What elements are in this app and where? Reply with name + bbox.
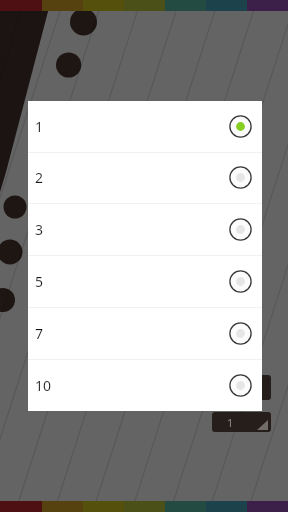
staticText: 2 — [35, 168, 44, 187]
button[interactable]: 7 — [28, 307, 262, 359]
button[interactable]: 10 — [28, 359, 262, 411]
staticText: 1 — [227, 415, 234, 430]
other: Resize handle — [258, 375, 271, 400]
staticText: 10 — [35, 376, 52, 395]
staticText: 5 — [35, 272, 44, 291]
button[interactable]: 2 — [28, 152, 262, 203]
other: Resize window — [212, 412, 271, 432]
button[interactable]: 3 — [28, 203, 262, 255]
staticText: 7 — [35, 324, 44, 343]
button[interactable]: 1 — [28, 101, 262, 152]
button[interactable]: 5 — [28, 255, 262, 307]
staticText: 3 — [35, 220, 44, 239]
staticText: 1 — [35, 117, 44, 136]
